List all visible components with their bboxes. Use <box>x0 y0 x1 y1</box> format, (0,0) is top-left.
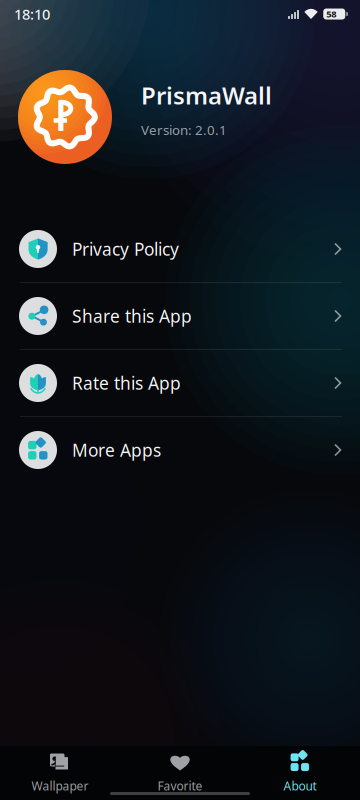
staticText: Share this App <box>72 304 192 327</box>
staticText: More Apps <box>72 438 161 461</box>
staticText: Version: 2.0.1 <box>141 121 227 139</box>
button[interactable]: Share this App <box>0 283 360 349</box>
staticText: Privacy Policy <box>72 237 179 260</box>
button[interactable]: About <box>240 753 360 794</box>
button[interactable]: Privacy Policy <box>0 216 360 282</box>
button[interactable]: Wallpaper <box>0 753 120 794</box>
staticText: PrismaWall <box>141 79 272 111</box>
button[interactable]: Rate this App <box>0 350 360 416</box>
button[interactable]: Favorite <box>120 753 240 794</box>
button[interactable]: More Apps <box>0 417 360 483</box>
staticText: 58 <box>326 8 336 20</box>
staticText: 18:10 <box>14 4 50 24</box>
staticText: Rate this App <box>72 371 181 394</box>
staticText: Wallpaper <box>31 778 88 794</box>
staticText: Favorite <box>157 778 202 794</box>
staticText: About <box>283 778 316 794</box>
